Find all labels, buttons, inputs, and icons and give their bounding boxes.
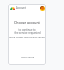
staticText: Account	[16, 6, 26, 10]
button[interactable]: App logo	[10, 6, 26, 10]
staticText: Choose account	[14, 20, 40, 25]
button[interactable]: Learn more	[21, 55, 34, 58]
staticText: to continue to	[18, 28, 36, 32]
staticText: Some longer descriptive sentence of text…	[8, 35, 46, 38]
button[interactable]: Account	[40, 6, 45, 11]
staticText: the service requested	[14, 31, 41, 35]
